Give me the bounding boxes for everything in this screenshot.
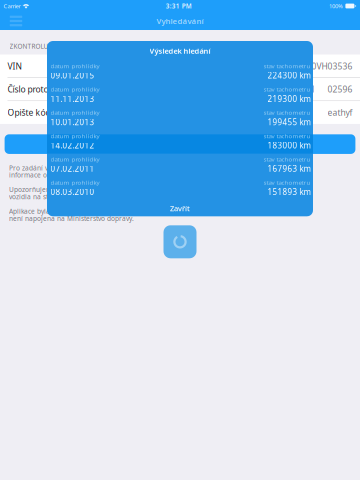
staticText: 11.11.2013 (50, 93, 94, 104)
staticText: eathyf (327, 107, 352, 118)
staticText: 183000 km (267, 140, 310, 151)
staticText: 3:31 PM (166, 2, 192, 10)
staticText: stav tachometru (263, 85, 310, 93)
staticText: 14.02.2012 (50, 140, 94, 151)
button[interactable]: datum prohlídky (47, 177, 313, 200)
staticText: Pro zadání většího množství dotazů je nu… (9, 163, 217, 172)
staticText: datum prohlídky (50, 108, 99, 117)
staticText: 07.02.2011 (50, 163, 94, 174)
staticText: ZKONTROLUJTE ZADANÉ ÚDAJE (9, 42, 108, 51)
button[interactable]: datum prohlídky (47, 130, 313, 154)
button[interactable]: VIN (0, 55, 360, 77)
staticText: stav tachometru (263, 132, 310, 140)
staticText: stav tachometru (263, 62, 310, 70)
staticText: vozidla na stanicích technické kontroly … (9, 192, 145, 201)
button[interactable]: Vyhledat (5, 134, 355, 154)
staticText: datum prohlídky (50, 85, 99, 93)
button[interactable]: Zavřít (47, 200, 313, 216)
staticText: VIN (7, 60, 21, 72)
button[interactable]: Číslo protokolu (0, 78, 360, 101)
staticText: datum prohlídky (50, 178, 99, 187)
button[interactable]: datum prohlídky (47, 107, 313, 130)
staticText: datum prohlídky (50, 62, 99, 70)
staticText: 167963 km (267, 163, 310, 174)
staticText: 199455 km (267, 117, 310, 128)
staticText: 09.01.2015 (50, 70, 94, 81)
staticText: není napojena na Ministerstvo dopravy. (9, 214, 134, 223)
staticText: Zavřít (170, 203, 190, 213)
staticText: 01 02596 (305, 83, 352, 95)
staticText: WBAVP91060VH03536 (262, 60, 352, 72)
staticText: 151893 km (267, 187, 310, 197)
staticText: Vyhledávání (156, 16, 203, 26)
button[interactable]: datum prohlídky (47, 60, 313, 84)
staticText: Výsledek hledání (149, 46, 210, 56)
staticText: Carrier (3, 2, 20, 10)
staticText: stav tachometru (263, 155, 310, 163)
staticText: stav tachometru (263, 108, 310, 117)
staticText: 100% (329, 2, 343, 10)
staticText: 219300 km (267, 93, 310, 104)
staticText: datum prohlídky (50, 155, 99, 163)
staticText: 224300 km (267, 70, 310, 81)
staticText: datum prohlídky (50, 132, 99, 140)
staticText: Upozorňujeme, že v databázi jsou evidová… (9, 185, 201, 194)
staticText: 10.01.2013 (50, 117, 94, 128)
button[interactable]: datum prohlídky (47, 84, 313, 107)
staticText: Číslo protokolu (7, 83, 65, 95)
staticText: stav tachometru (263, 178, 310, 187)
button[interactable]: Opište kód z obrázku (0, 101, 360, 124)
button[interactable]: datum prohlídky (47, 154, 313, 177)
button[interactable]: Menu (3, 12, 29, 30)
staticText: Opište kód z obrázku (7, 107, 90, 118)
staticText: Aplikace byla vytvořena ve spolupráci s … (9, 207, 210, 216)
staticText: 08.03.2010 (50, 187, 94, 197)
staticText: informace o jednotlivých prohlídkách voz… (9, 171, 151, 179)
